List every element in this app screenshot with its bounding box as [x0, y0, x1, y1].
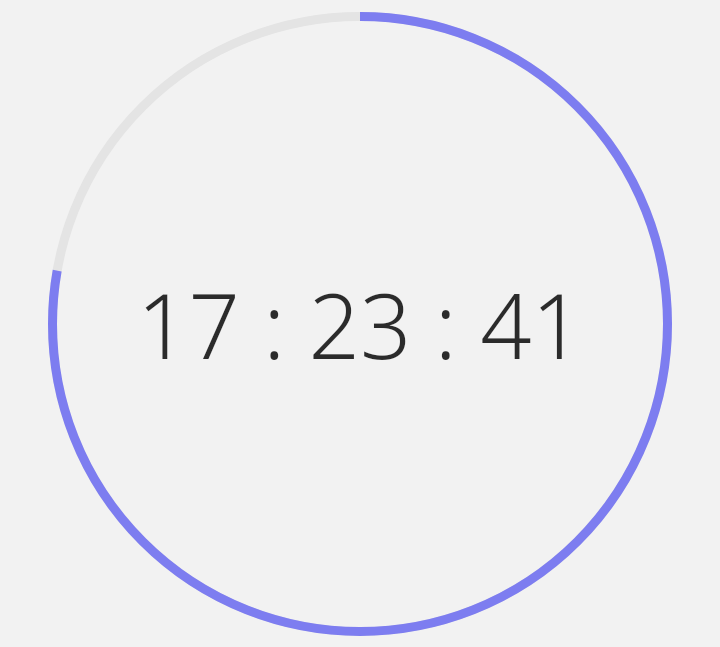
staticText: 17 : 23 : 41	[137, 263, 583, 386]
button[interactable]: Timer progress 17:23:41 remaining	[48, 12, 672, 636]
